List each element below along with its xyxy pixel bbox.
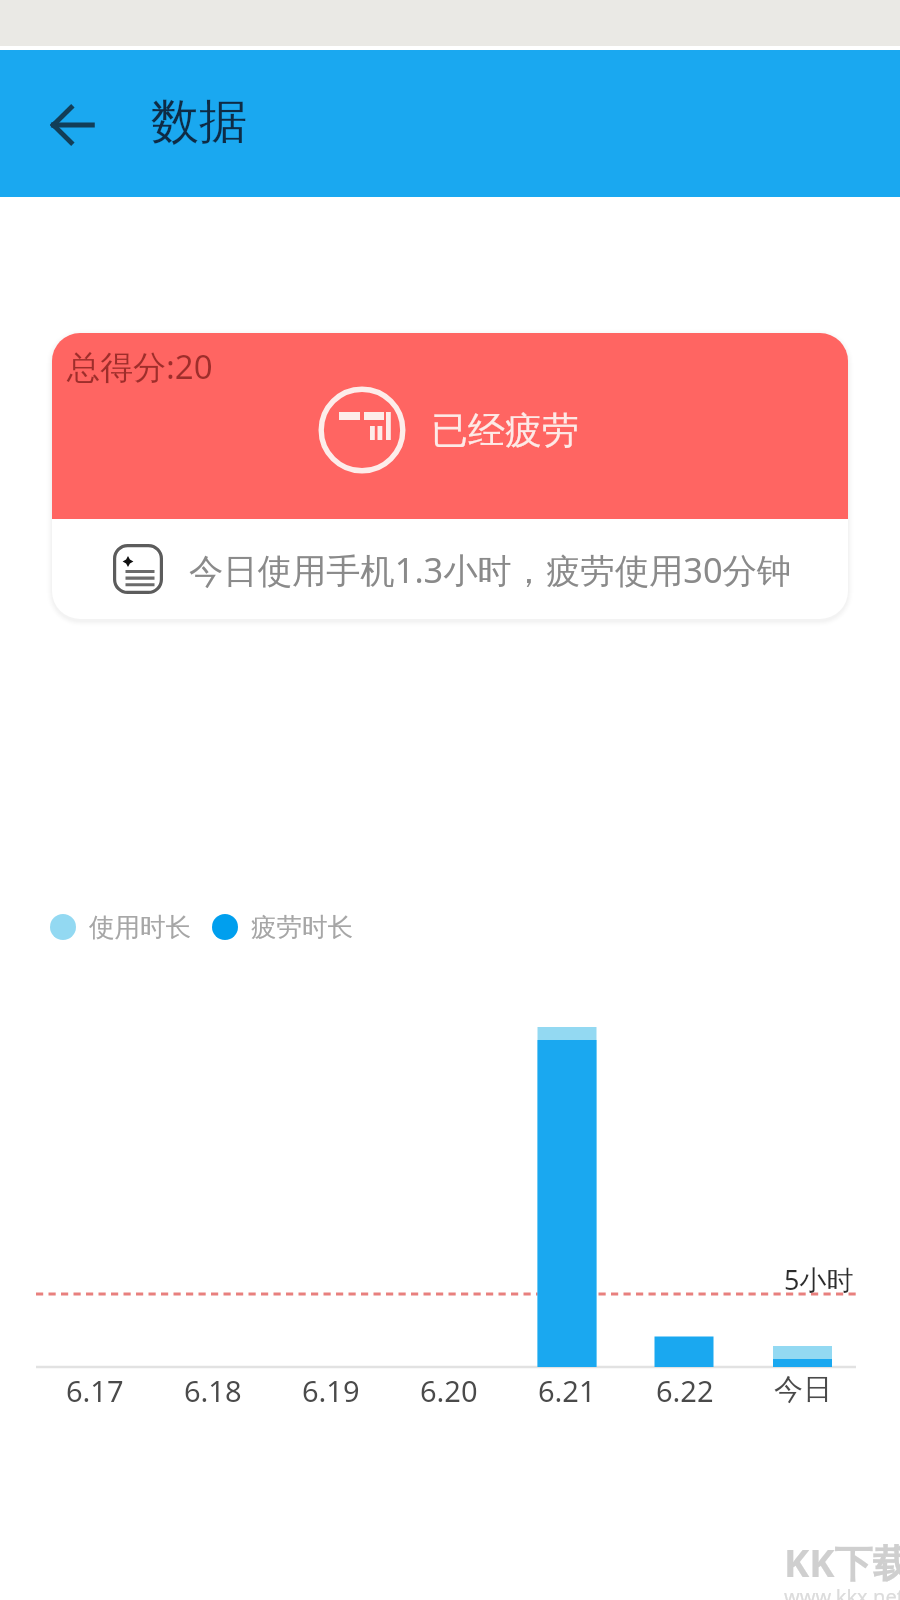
staticText: www.kkx.net (784, 1583, 900, 1600)
staticText: 使用时长 (89, 911, 191, 943)
staticText: 6.20 (420, 1371, 478, 1410)
staticText: 今日 (774, 1371, 832, 1408)
staticText: 6.21 (538, 1371, 596, 1410)
staticText: 6.17 (66, 1371, 124, 1410)
button[interactable]: 疲劳时长 (212, 911, 353, 943)
button[interactable]: 使用时长 (50, 911, 191, 943)
staticText: 5小时 (784, 1261, 854, 1298)
button[interactable]: 总得分:20 (52, 333, 848, 619)
staticText: 总得分:20 (67, 344, 213, 389)
staticText: 6.22 (656, 1371, 714, 1410)
staticText: 疲劳时长 (251, 911, 353, 943)
staticText: KK下载 (784, 1536, 900, 1588)
staticText: 6.18 (184, 1371, 242, 1410)
staticText: 已经疲劳 (431, 407, 579, 454)
staticText: 6.19 (302, 1371, 360, 1410)
staticText: 数据 (151, 92, 247, 152)
button[interactable]: Back (36, 89, 108, 161)
staticText: 今日使用手机1.3小时，疲劳使用30分钟 (189, 546, 792, 593)
